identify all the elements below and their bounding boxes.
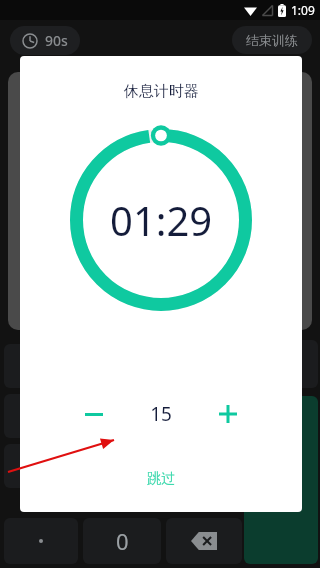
button[interactable]: Decrease [72,392,116,436]
button[interactable]: Timer [10,26,80,55]
staticText: 休息计时器 [124,82,199,101]
button[interactable]: 0 [83,518,161,564]
button[interactable]: 跳过 [129,464,193,494]
other: Timer [22,33,38,49]
button[interactable]: 结束训练 [232,26,312,54]
staticText: 0 [116,526,129,556]
staticText: 15 [150,401,172,427]
other: Backspace [191,532,217,550]
button[interactable]: Backspace [166,518,242,564]
staticText: 01:29 [110,193,213,247]
button[interactable] [4,518,78,564]
button[interactable]: Increase [206,392,250,436]
staticText: 结束训练 [246,32,298,48]
staticText: 跳过 [147,470,175,488]
staticText: 1:09 [291,2,315,18]
staticText: 90s [45,31,68,50]
